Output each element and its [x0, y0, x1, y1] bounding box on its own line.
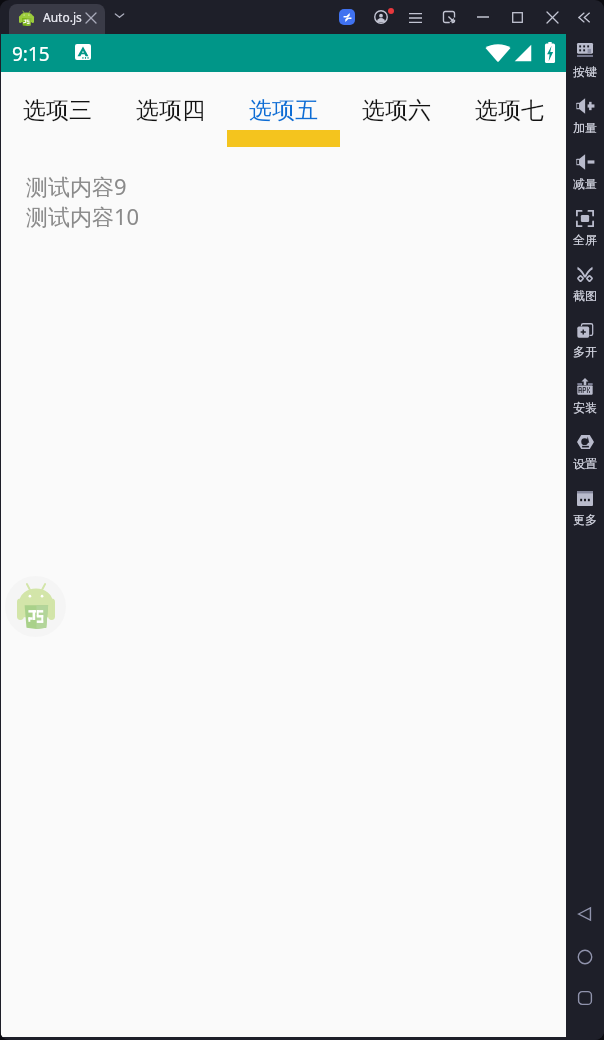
staticText: 安装	[566, 400, 604, 415]
button[interactable]: 选项三	[1, 72, 114, 147]
staticText: 选项五	[227, 96, 340, 125]
staticText: 9:15	[12, 41, 50, 67]
button[interactable]: Recents	[566, 981, 604, 1015]
staticText: 减量	[566, 176, 604, 191]
button[interactable]: Tab list	[114, 10, 125, 21]
button[interactable]: 设置	[566, 428, 604, 482]
button[interactable]: Auto.js	[9, 4, 105, 34]
button[interactable]: 选项四	[114, 72, 227, 147]
button[interactable]: Detach window	[437, 2, 461, 32]
button[interactable]: 截图	[566, 260, 604, 314]
button[interactable]: 选项五	[227, 72, 340, 147]
button[interactable]: Home	[566, 940, 604, 974]
button[interactable]: 选项七	[453, 72, 566, 147]
button[interactable]: Maximize	[506, 2, 529, 32]
staticText: 选项三	[1, 96, 114, 125]
staticText: 更多	[566, 512, 604, 527]
staticText: 测试内容9	[26, 171, 127, 201]
button[interactable]: 安装	[566, 372, 604, 426]
button[interactable]: Account	[374, 10, 388, 24]
button[interactable]: Back	[566, 897, 604, 931]
staticText: 截图	[566, 288, 604, 303]
button[interactable]: Close	[541, 2, 564, 32]
button[interactable]: 全屏	[566, 204, 604, 258]
button[interactable]: Close tab	[86, 13, 96, 23]
staticText: 按键	[566, 64, 604, 79]
button[interactable]: Collapse sidebar	[572, 2, 596, 32]
staticText: 多开	[566, 344, 604, 359]
staticText: 选项四	[114, 96, 227, 125]
button[interactable]: Accelerate	[339, 9, 355, 25]
staticText: 测试内容10	[26, 201, 140, 231]
button[interactable]: 更多	[566, 484, 604, 538]
button[interactable]: 按键	[566, 36, 604, 90]
button[interactable]: Minimize	[471, 2, 495, 32]
staticText: 选项七	[453, 96, 566, 125]
button[interactable]: 加量	[566, 92, 604, 146]
button[interactable]: 多开	[566, 316, 604, 370]
button[interactable]: Menu	[403, 2, 428, 32]
button[interactable]: 减量	[566, 148, 604, 202]
staticText: 加量	[566, 120, 604, 135]
staticText: 全屏	[566, 232, 604, 247]
button[interactable]: Auto.js floating widget	[5, 576, 66, 637]
staticText: 选项六	[340, 96, 453, 125]
staticText: 设置	[566, 456, 604, 471]
staticText: Auto.js	[43, 9, 82, 25]
button[interactable]: 选项六	[340, 72, 453, 147]
